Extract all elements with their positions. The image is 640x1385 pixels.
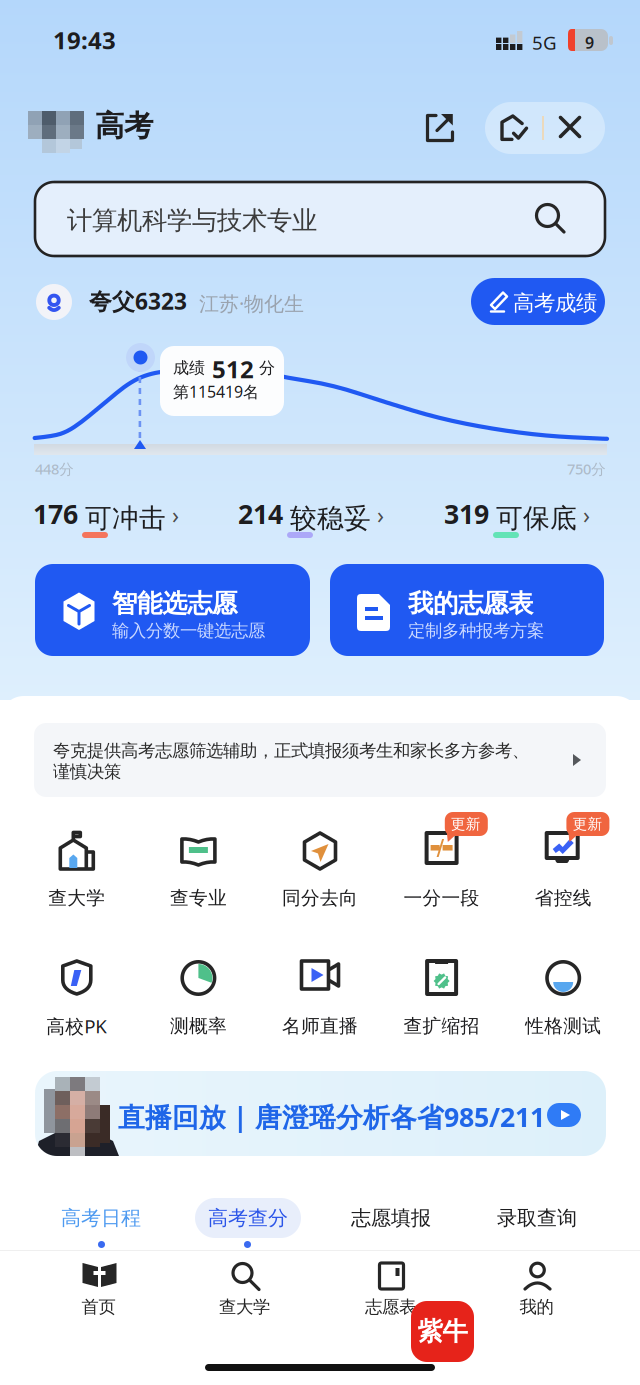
- staticText: 更新: [451, 815, 481, 833]
- staticText: 同分去向: [282, 886, 358, 909]
- staticText: 性格测试: [525, 1014, 601, 1037]
- button[interactable]: 直播回放 | 唐澄瑶分析各省985/211: [35, 1071, 606, 1156]
- staticText: 750分: [567, 459, 606, 478]
- button[interactable]: 智能选志愿: [35, 564, 310, 656]
- staticText: 第115419名: [173, 381, 259, 402]
- button[interactable]: 我的志愿表: [330, 564, 604, 656]
- staticText: 查专业: [170, 886, 227, 909]
- staticText: 志愿表: [365, 1296, 416, 1318]
- button[interactable]: 高考查分: [195, 1198, 301, 1238]
- button[interactable]: 测概率: [138, 948, 259, 1056]
- staticText: 一分一段: [404, 886, 480, 909]
- button[interactable]: 查扩缩招: [381, 948, 502, 1056]
- button[interactable]: 录取查询: [482, 1198, 592, 1238]
- staticText: 成绩: [173, 358, 205, 378]
- staticText: 名师直播: [282, 1014, 358, 1037]
- staticText: 录取查询: [497, 1206, 577, 1230]
- button[interactable]: 高考日程: [46, 1198, 156, 1238]
- staticText: 512: [212, 353, 254, 385]
- button[interactable]: 高考成绩: [471, 278, 605, 325]
- staticText: 查大学: [219, 1296, 270, 1318]
- button[interactable]: 我的: [464, 1258, 610, 1332]
- staticText: 查扩缩招: [404, 1014, 480, 1037]
- staticText: 较稳妥: [290, 502, 371, 535]
- staticText: 448分: [35, 459, 74, 478]
- button[interactable]: 夸克提供高考志愿筛选辅助，正式填报须考生和家长多方参考、: [34, 723, 606, 797]
- button[interactable]: 一分一段: [381, 820, 502, 928]
- button[interactable]: 查大学: [16, 820, 138, 928]
- button[interactable]: 计算机科学与技术专业: [35, 182, 605, 256]
- button[interactable]: 性格测试: [502, 948, 624, 1056]
- button[interactable]: 高校PK: [16, 948, 138, 1056]
- button[interactable]: 首页: [26, 1258, 172, 1332]
- button[interactable]: 319: [444, 496, 596, 542]
- staticText: 定制多种报考方案: [408, 620, 544, 641]
- button[interactable]: 小程序首页: [494, 102, 550, 154]
- staticText: 夸父6323: [89, 286, 187, 316]
- button[interactable]: 查大学: [172, 1258, 318, 1332]
- button[interactable]: 志愿表: [318, 1258, 464, 1332]
- staticText: 夸克提供高考志愿筛选辅助，正式填报须考生和家长多方参考、: [53, 740, 529, 761]
- staticText: 5G: [532, 30, 557, 55]
- staticText: 可保底: [496, 502, 577, 535]
- staticText: 谨慎决策: [53, 761, 121, 782]
- staticText: 智能选志愿: [112, 588, 237, 619]
- staticText: 紫牛: [417, 1316, 467, 1347]
- staticText: ›: [172, 500, 179, 530]
- staticText: 高考日程: [61, 1206, 141, 1230]
- staticText: 省控线: [535, 886, 592, 909]
- staticText: 测概率: [170, 1014, 227, 1037]
- button[interactable]: 214: [238, 496, 390, 542]
- staticText: ›: [583, 500, 590, 530]
- staticText: 319: [444, 496, 489, 531]
- staticText: 高考成绩: [513, 290, 597, 316]
- staticText: 志愿填报: [351, 1206, 431, 1230]
- staticText: 214: [238, 496, 283, 531]
- button[interactable]: 志愿填报: [336, 1198, 446, 1238]
- button[interactable]: 关闭: [544, 102, 596, 154]
- staticText: 9: [585, 32, 594, 53]
- staticText: 我的: [519, 1296, 553, 1318]
- staticText: 高校PK: [46, 1014, 107, 1038]
- staticText: 176: [33, 496, 78, 531]
- staticText: 分: [259, 358, 275, 378]
- staticText: 我的志愿表: [408, 588, 533, 619]
- staticText: 19:43: [53, 24, 116, 56]
- button[interactable]: 分享: [414, 101, 468, 155]
- staticText: 查大学: [48, 886, 105, 909]
- staticText: 高考: [95, 108, 153, 144]
- button[interactable]: 176: [33, 496, 185, 542]
- button[interactable]: 同分去向: [259, 820, 381, 928]
- staticText: 直播回放 | 唐澄瑶分析各省985/211: [118, 1099, 545, 1134]
- button[interactable]: 名师直播: [259, 948, 381, 1056]
- staticText: 输入分数一键选志愿: [112, 620, 265, 641]
- staticText: 可冲击: [85, 502, 166, 535]
- staticText: 更新: [572, 815, 602, 833]
- staticText: 计算机科学与技术专业: [67, 205, 317, 236]
- staticText: ›: [377, 500, 384, 530]
- staticText: 高考查分: [208, 1206, 288, 1230]
- button[interactable]: 紫牛新闻: [411, 1301, 474, 1362]
- staticText: 首页: [81, 1296, 115, 1318]
- button[interactable]: 查专业: [138, 820, 259, 928]
- button[interactable]: 省控线: [502, 820, 624, 928]
- staticText: 江苏·物化生: [199, 290, 304, 317]
